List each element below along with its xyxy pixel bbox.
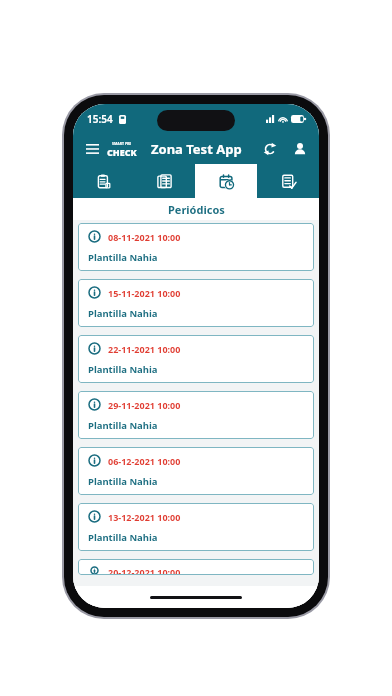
staticText: 13-12-2021 10:00	[108, 511, 181, 523]
staticText: SMART PRE	[112, 141, 132, 146]
button[interactable]: 20-12-2021 10:00	[78, 559, 314, 575]
button[interactable]: Periodic	[195, 164, 257, 198]
staticText: 08-11-2021 10:00	[108, 231, 181, 243]
button[interactable]: 13-12-2021 10:00	[78, 503, 314, 551]
button[interactable]: 29-11-2021 10:00	[78, 391, 314, 439]
staticText: Plantilla Nahia	[88, 363, 158, 376]
button[interactable]: Checklists	[257, 164, 319, 198]
staticText: 15:54	[87, 112, 113, 126]
staticText: 22-11-2021 10:00	[108, 343, 181, 355]
button[interactable]: Inspections	[73, 164, 134, 198]
button[interactable]: 15-11-2021 10:00	[78, 279, 314, 327]
button[interactable]: Profile	[289, 138, 311, 160]
staticText: Plantilla Nahia	[88, 307, 158, 320]
staticText: 06-12-2021 10:00	[108, 455, 181, 467]
button[interactable]: Menu	[81, 138, 103, 160]
staticText: Plantilla Nahia	[88, 531, 158, 544]
staticText: Zona Test App	[151, 140, 242, 158]
staticText: Periódicos	[168, 202, 225, 217]
button[interactable]: Documents	[134, 164, 195, 198]
staticText: Plantilla Nahia	[88, 419, 158, 432]
staticText: 15-11-2021 10:00	[108, 287, 181, 299]
staticText: 29-11-2021 10:00	[108, 399, 181, 411]
staticText: Plantilla Nahia	[88, 251, 158, 264]
button[interactable]: 08-11-2021 10:00	[78, 223, 314, 271]
button[interactable]: 06-12-2021 10:00	[78, 447, 314, 495]
button[interactable]: 22-11-2021 10:00	[78, 335, 314, 383]
staticText: Plantilla Nahia	[88, 475, 158, 488]
button[interactable]: Sync	[259, 138, 281, 160]
staticText: 20-12-2021 10:00	[108, 566, 181, 575]
staticText: CHECK	[107, 146, 137, 158]
